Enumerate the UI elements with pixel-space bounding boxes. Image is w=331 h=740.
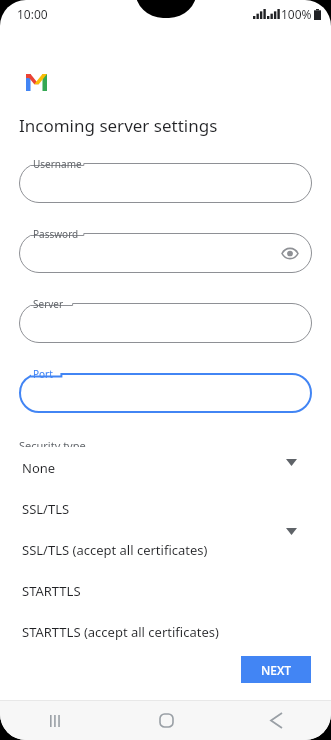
button[interactable]: Open dropdown	[286, 459, 297, 466]
staticText: 10:00	[17, 6, 48, 22]
button[interactable]: Home	[111, 701, 221, 740]
staticText: None	[22, 459, 56, 477]
button[interactable]: Recents	[0, 701, 111, 740]
button[interactable]: Back	[221, 701, 331, 740]
staticText: SSL/TLS	[22, 500, 70, 518]
button[interactable]: STARTTLS (accept all certificates)	[14, 611, 277, 652]
button[interactable]: SSL/TLS	[14, 488, 277, 529]
staticText: STARTTLS (accept all certificates)	[22, 623, 219, 641]
staticText: Security type	[19, 438, 86, 453]
button[interactable]: Username	[19, 163, 312, 203]
button[interactable]: None	[14, 447, 277, 488]
staticText: Incoming server settings	[19, 114, 218, 137]
button[interactable]: Server	[19, 303, 312, 343]
staticText: Username	[33, 157, 82, 171]
button[interactable]: Password	[19, 233, 312, 273]
staticText: SSL/TLS (accept all certificates)	[22, 541, 208, 559]
button[interactable]: NEXT	[241, 656, 311, 683]
staticText: 100%	[281, 6, 312, 22]
staticText: NEXT	[261, 662, 292, 678]
button[interactable]: SSL/TLS (accept all certificates)	[14, 529, 277, 570]
button[interactable]: STARTTLS	[14, 570, 277, 611]
button[interactable]: Show password	[281, 244, 299, 262]
staticText: Port	[33, 367, 53, 381]
staticText: Server	[33, 297, 64, 311]
staticText: Password	[33, 227, 79, 241]
button[interactable]: Port	[19, 373, 312, 413]
button[interactable]: Open dropdown	[286, 528, 297, 535]
staticText: STARTTLS	[22, 582, 81, 600]
